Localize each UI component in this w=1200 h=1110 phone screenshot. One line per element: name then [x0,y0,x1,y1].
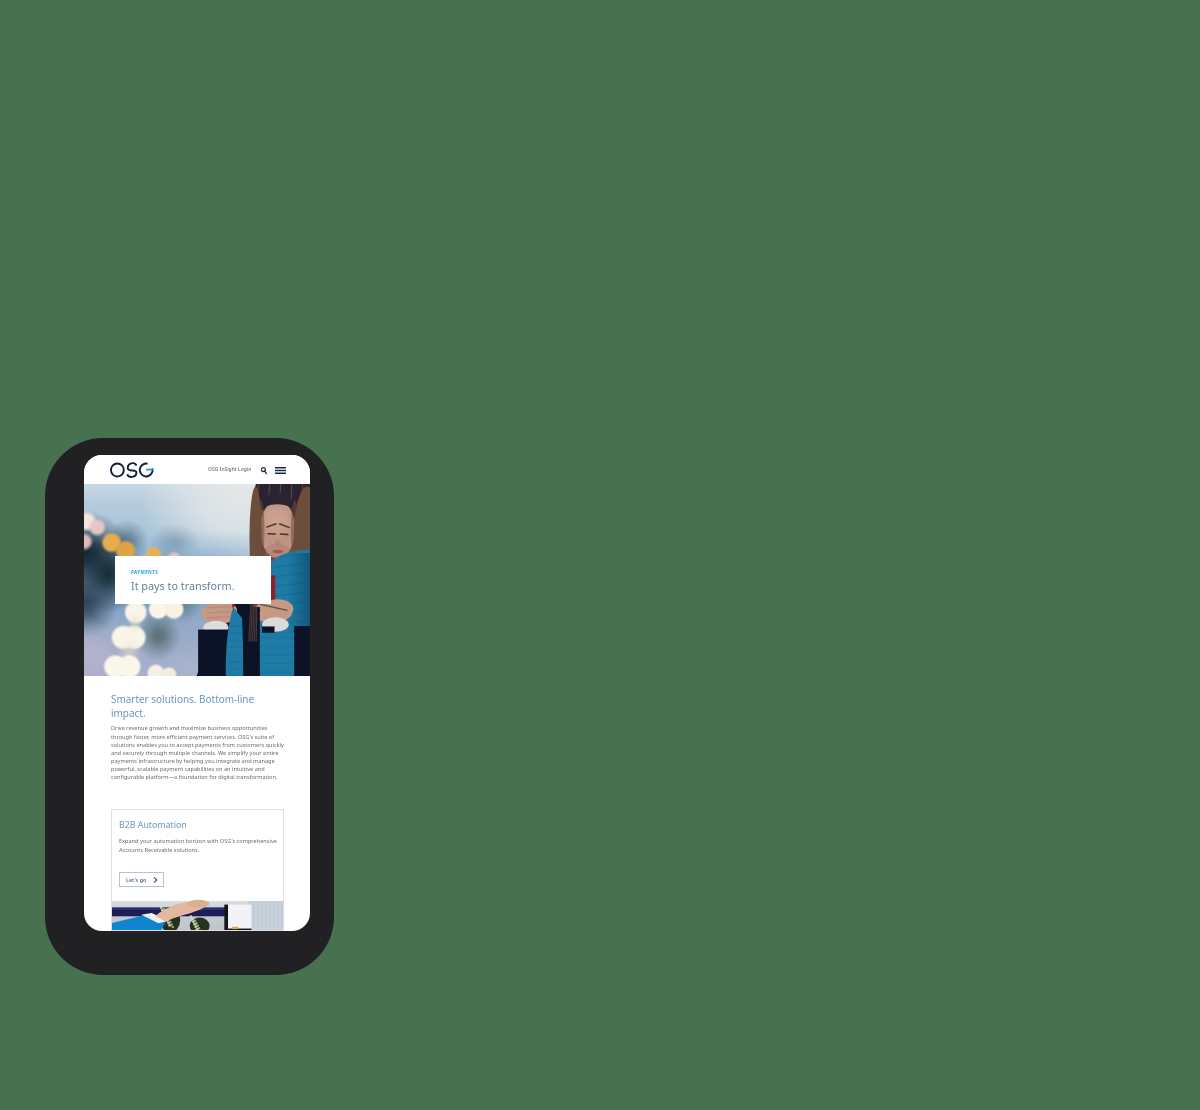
button[interactable]: Search [259,464,268,476]
staticText: It pays to transform. [131,578,235,593]
staticText: Let's go [126,876,147,883]
button[interactable]: Let's go [119,872,164,887]
button[interactable]: OSG InSight Login [208,466,252,473]
button[interactable]: OSG home [110,463,142,477]
staticText: Drive revenue growth and maximize busine… [111,724,288,780]
staticText: OSG InSight Login [208,466,252,473]
staticText: Smarter solutions. Bottom-line impact. [111,692,288,720]
staticText: PAYMENTS [131,569,159,575]
staticText: B2B Automation [119,819,187,831]
staticText: Expand your automation horizon with OSG'… [119,837,278,853]
button[interactable]: Menu [274,464,286,476]
button[interactable]: B2B Automation [111,809,284,931]
